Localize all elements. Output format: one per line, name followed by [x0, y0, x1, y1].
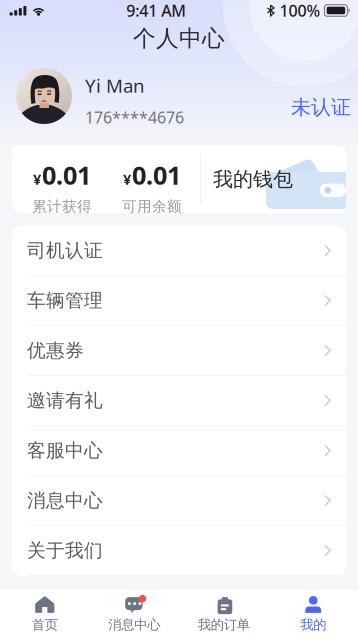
- staticText: 消息中心: [108, 617, 160, 633]
- staticText: 消息中心: [27, 489, 103, 512]
- button[interactable]: 首页: [0, 589, 89, 639]
- staticText: 9:41 AM: [126, 0, 186, 21]
- staticText: 未认证: [291, 95, 351, 120]
- button[interactable]: 我的订单: [179, 589, 268, 639]
- button[interactable]: 优惠券: [12, 326, 346, 376]
- staticText: 车辆管理: [27, 289, 103, 312]
- staticText: 客服中心: [27, 439, 103, 462]
- staticText: 可用余额: [122, 198, 182, 216]
- button[interactable]: 关于我们: [12, 526, 346, 576]
- button[interactable]: 客服中心: [12, 426, 346, 476]
- staticText: ¥: [123, 169, 131, 189]
- staticText: Yi Man: [85, 73, 145, 98]
- button[interactable]: 消息中心: [12, 476, 346, 526]
- staticText: 我的: [300, 617, 326, 633]
- staticText: 100%: [279, 0, 320, 21]
- staticText: 邀请有礼: [27, 389, 103, 412]
- staticText: 首页: [32, 617, 58, 633]
- staticText: 累计获得: [32, 198, 92, 216]
- button[interactable]: 消息中心: [89, 589, 179, 639]
- staticText: 关于我们: [27, 539, 103, 562]
- button[interactable]: 我的: [268, 589, 358, 639]
- staticText: 0.01: [42, 158, 91, 192]
- button[interactable]: 未认证: [285, 89, 357, 126]
- staticText: 个人中心: [133, 25, 225, 52]
- button[interactable]: 我的钱包: [205, 155, 301, 204]
- button[interactable]: 车辆管理: [12, 276, 346, 326]
- staticText: 优惠券: [27, 339, 84, 362]
- staticText: ¥: [33, 169, 41, 189]
- staticText: 0.01: [132, 158, 181, 192]
- staticText: 司机认证: [27, 239, 103, 262]
- button[interactable]: 司机认证: [12, 226, 346, 276]
- staticText: 我的订单: [198, 617, 250, 633]
- staticText: 176****4676: [85, 107, 184, 128]
- staticText: 我的钱包: [213, 167, 293, 192]
- button[interactable]: 邀请有礼: [12, 376, 346, 426]
